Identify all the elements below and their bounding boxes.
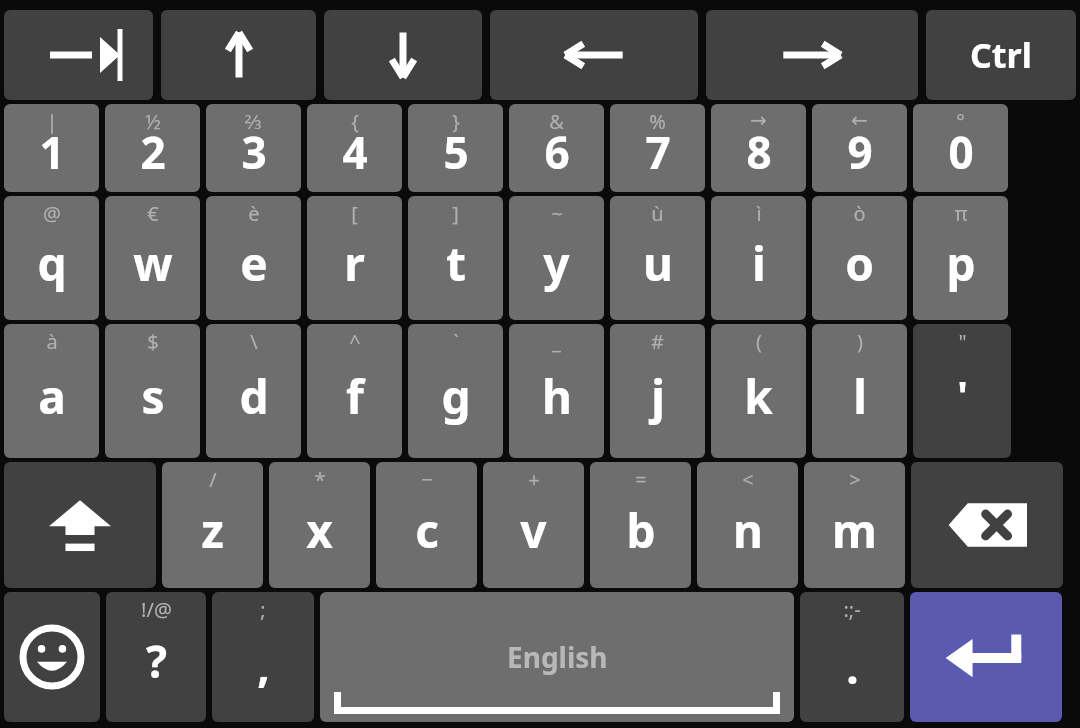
staticText: ò [853, 200, 866, 227]
button[interactable]: → [711, 104, 806, 192]
button[interactable]: Ctrl [926, 10, 1076, 100]
button[interactable]: English [320, 592, 794, 722]
button[interactable]: à [4, 324, 99, 458]
staticText: v [520, 499, 547, 562]
staticText: x [306, 499, 333, 562]
staticText: à [46, 328, 58, 355]
staticText: 8 [746, 122, 772, 182]
staticText: { [351, 108, 359, 135]
staticText: 5 [443, 122, 469, 182]
button[interactable]: @ [4, 196, 99, 320]
staticText: b [626, 499, 656, 562]
button[interactable]: ^ [307, 324, 402, 458]
button[interactable]: ù [610, 196, 705, 320]
staticText: o [845, 232, 874, 295]
staticText: t [446, 232, 466, 295]
staticText: ì [756, 200, 762, 227]
button[interactable]: Down [324, 10, 482, 100]
button[interactable]: ° [913, 104, 1008, 192]
button[interactable]: π [913, 196, 1008, 320]
button[interactable]: Backspace [911, 462, 1063, 588]
staticText: j [651, 365, 665, 428]
staticText: € [147, 200, 159, 227]
button[interactable]: ) [812, 324, 907, 458]
button[interactable]: % [610, 104, 705, 192]
staticText: k [744, 365, 773, 428]
button[interactable]: = [590, 462, 691, 588]
button[interactable]: ì [711, 196, 806, 320]
button[interactable]: Up [161, 10, 316, 100]
staticText: ù [651, 200, 664, 227]
button[interactable]: ò [812, 196, 907, 320]
button[interactable]: \ [206, 324, 301, 458]
button[interactable]: < [697, 462, 798, 588]
button[interactable]: ⅔ [206, 104, 301, 192]
button[interactable]: Tab [4, 10, 153, 100]
button[interactable]: ½ [105, 104, 200, 192]
staticText: > [849, 466, 861, 493]
staticText: \ [250, 328, 258, 355]
button[interactable]: > [804, 462, 905, 588]
staticText: < [742, 466, 754, 493]
staticText: & [549, 108, 564, 135]
button[interactable]: ` [408, 324, 503, 458]
button[interactable]: + [483, 462, 584, 588]
staticText: English [507, 638, 608, 676]
button[interactable]: Shift [4, 462, 156, 588]
button[interactable]: ; [212, 592, 314, 722]
staticText: , [257, 635, 270, 695]
button[interactable]: è [206, 196, 301, 320]
staticText: !/@ [141, 596, 172, 623]
button[interactable]: Enter [910, 592, 1062, 722]
button[interactable]: ] [408, 196, 503, 320]
staticText: _ [552, 328, 561, 355]
button[interactable]: " [913, 324, 1011, 458]
button[interactable]: Emoji [4, 592, 100, 722]
button[interactable]: :;- [800, 592, 904, 722]
button[interactable]: Left [490, 10, 698, 100]
staticText: p [946, 232, 976, 295]
staticText: " [958, 328, 967, 355]
staticText: l [853, 365, 867, 428]
staticText: h [542, 365, 572, 428]
staticText: = [635, 466, 647, 493]
staticText: π [954, 200, 968, 227]
button[interactable]: ( [711, 324, 806, 458]
button[interactable]: } [408, 104, 503, 192]
button[interactable]: € [105, 196, 200, 320]
staticText: 2 [140, 122, 166, 182]
staticText: c [415, 499, 439, 562]
staticText: ← [851, 108, 868, 131]
staticText: u [643, 232, 673, 295]
staticText: ] [452, 200, 459, 227]
button[interactable]: [ [307, 196, 402, 320]
button[interactable]: Right [706, 10, 918, 100]
button[interactable]: _ [509, 324, 604, 458]
button[interactable]: / [162, 462, 263, 588]
staticText: @ [43, 200, 61, 227]
staticText: * [314, 466, 326, 493]
button[interactable]: { [307, 104, 402, 192]
staticText: 7 [645, 122, 671, 182]
button[interactable]: | [4, 104, 99, 192]
staticText: → [750, 108, 767, 131]
button[interactable]: ← [812, 104, 907, 192]
staticText: i [752, 232, 766, 295]
staticText: $ [147, 328, 159, 355]
button[interactable]: $ [105, 324, 200, 458]
staticText: ½ [145, 108, 161, 135]
staticText: + [528, 466, 540, 493]
staticText: | [46, 108, 58, 135]
button[interactable]: − [376, 462, 477, 588]
staticText: # [651, 328, 664, 355]
button[interactable]: * [269, 462, 370, 588]
button[interactable]: ~ [509, 196, 604, 320]
staticText: % [649, 108, 666, 135]
button[interactable]: & [509, 104, 604, 192]
staticText: q [37, 232, 67, 295]
staticText: ~ [551, 200, 563, 227]
staticText: s [141, 365, 165, 428]
button[interactable]: # [610, 324, 705, 458]
staticText: ` [453, 328, 459, 355]
button[interactable]: !/@ [106, 592, 206, 722]
